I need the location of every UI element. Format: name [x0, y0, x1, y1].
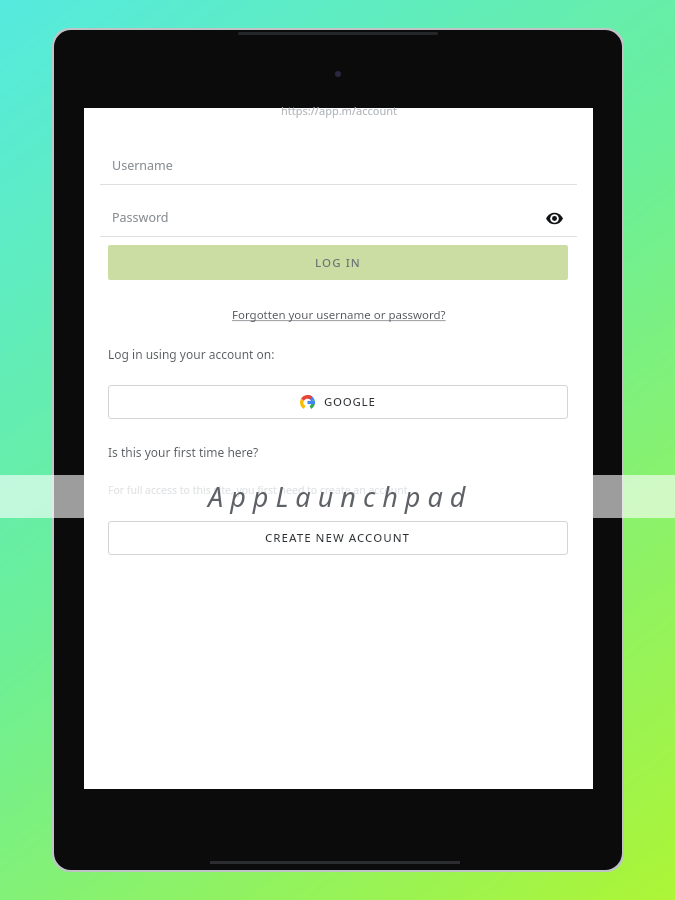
- staticText: Is this your first time here?: [108, 444, 259, 460]
- staticText: LOG IN: [315, 255, 361, 271]
- button[interactable]: GOOGLE: [108, 385, 568, 419]
- staticText: Forgotten your username or password?: [232, 307, 446, 323]
- button[interactable]: LOG IN: [108, 245, 568, 280]
- staticText: AppLaunchpad: [208, 478, 473, 515]
- button[interactable]: CREATE NEW ACCOUNT: [108, 521, 568, 555]
- button[interactable]: Forgotten your username or password?: [219, 305, 459, 325]
- staticText: GOOGLE: [324, 394, 376, 410]
- staticText: https://app.m/account: [214, 103, 464, 118]
- button[interactable]: Show password: [541, 205, 567, 231]
- button[interactable]: Username: [100, 146, 577, 185]
- button[interactable]: Password: [100, 198, 577, 237]
- staticText: Password: [112, 209, 169, 226]
- staticText: CREATE NEW ACCOUNT: [265, 530, 411, 546]
- staticText: Log in using your account on:: [108, 346, 275, 362]
- staticText: For full access to this site, you first …: [108, 483, 411, 497]
- staticText: Username: [112, 157, 173, 174]
